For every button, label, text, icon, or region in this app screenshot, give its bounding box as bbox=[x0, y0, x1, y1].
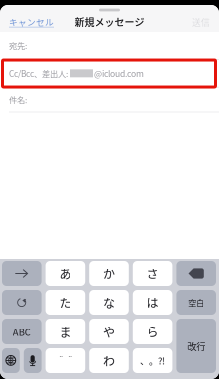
staticText: は bbox=[147, 294, 159, 311]
staticText: 、。?! bbox=[140, 354, 165, 367]
button[interactable]: ＾＾ bbox=[46, 348, 85, 373]
button[interactable]: あ bbox=[46, 261, 85, 286]
staticText: @icloud.com bbox=[94, 67, 144, 79]
button[interactable]: Undo bbox=[2, 290, 42, 315]
button[interactable]: Next candidate bbox=[2, 261, 42, 286]
button[interactable]: キャンセル bbox=[0, 12, 60, 32]
staticText: キャンセル bbox=[9, 16, 54, 28]
staticText: 送信 bbox=[192, 16, 210, 28]
button[interactable]: ABC bbox=[2, 319, 42, 344]
staticText: わ bbox=[103, 352, 115, 369]
staticText: ABC bbox=[13, 325, 31, 338]
staticText: か bbox=[103, 265, 115, 282]
button[interactable]: 宛先: bbox=[0, 32, 219, 59]
button[interactable]: ま bbox=[46, 319, 85, 344]
button[interactable]: Cc/Bcc、差出人: bbox=[0, 60, 219, 87]
button[interactable]: た bbox=[46, 290, 85, 315]
staticText: 改行 bbox=[187, 339, 205, 353]
staticText: あ bbox=[59, 265, 71, 282]
button[interactable]: Delete bbox=[176, 261, 216, 286]
staticText: ま bbox=[59, 323, 71, 340]
staticText: ＾＾ bbox=[56, 354, 74, 367]
button[interactable]: Dictation bbox=[24, 348, 42, 373]
staticText: 宛先: bbox=[9, 39, 27, 51]
button[interactable]: 改行 bbox=[176, 319, 216, 373]
staticText: さ bbox=[147, 265, 159, 282]
button[interactable]: 件名: bbox=[0, 88, 219, 112]
button[interactable]: 空白 bbox=[176, 290, 216, 315]
button[interactable]: Next keyboard bbox=[2, 348, 20, 373]
staticText: 空白 bbox=[188, 297, 204, 308]
button[interactable]: ら bbox=[133, 319, 172, 344]
button[interactable]: 送信 bbox=[186, 12, 219, 32]
staticText: や bbox=[103, 323, 115, 340]
button[interactable]: さ bbox=[133, 261, 172, 286]
staticText: な bbox=[103, 294, 115, 311]
button[interactable]: わ bbox=[89, 348, 129, 373]
button[interactable]: か bbox=[89, 261, 129, 286]
staticText: ら bbox=[147, 323, 159, 340]
staticText: Cc/Bcc、差出人: bbox=[9, 67, 68, 79]
staticText: 新規メッセージ bbox=[74, 15, 144, 29]
staticText: 件名: bbox=[9, 94, 27, 106]
button[interactable]: や bbox=[89, 319, 129, 344]
button[interactable]: は bbox=[133, 290, 172, 315]
button[interactable]: な bbox=[89, 290, 129, 315]
staticText: た bbox=[59, 294, 71, 311]
button[interactable]: 、。?! bbox=[133, 348, 172, 373]
